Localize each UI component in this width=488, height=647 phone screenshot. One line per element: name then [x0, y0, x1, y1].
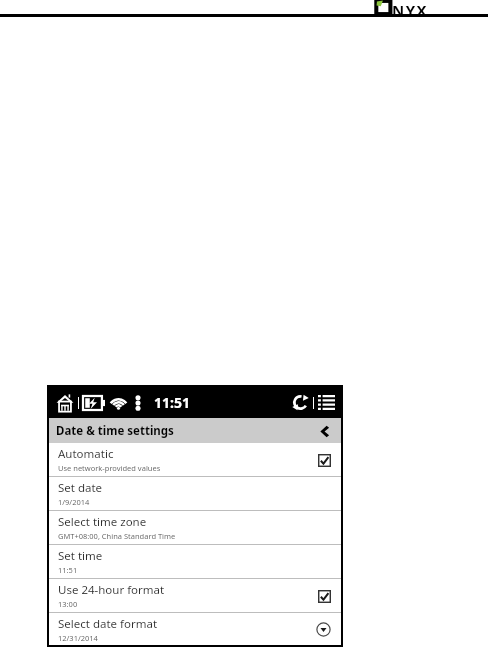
staticText: 12/31/2014	[58, 633, 98, 643]
button[interactable]: Checked	[316, 588, 332, 604]
staticText: 11:51	[58, 565, 78, 575]
staticText: Automatic	[58, 446, 114, 462]
button[interactable]: Set time	[49, 545, 341, 578]
staticText: Use network-provided values	[58, 463, 161, 473]
button[interactable]: Back	[314, 422, 332, 440]
staticText: Select time zone	[58, 514, 147, 530]
staticText: 13:00	[58, 599, 78, 609]
button[interactable]: Select date format	[314, 620, 332, 638]
staticText: Date & time settings	[56, 423, 174, 439]
staticText: GMT+08:00, China Standard Time	[58, 531, 176, 541]
button[interactable]: Use 24-hour format	[49, 579, 341, 612]
staticText: Set time	[58, 548, 103, 564]
other: More options	[134, 395, 142, 411]
staticText: 1/9/2014	[58, 497, 90, 507]
staticText: NYX	[392, 0, 429, 15]
button[interactable]: Select date format	[49, 613, 341, 645]
staticText: Set date	[58, 480, 103, 496]
button[interactable]: Select time zone	[49, 511, 341, 544]
button[interactable]: Automatic	[49, 443, 341, 476]
other: Home	[55, 393, 75, 413]
staticText: 11:51	[154, 393, 190, 412]
button[interactable]: Checked	[316, 452, 332, 468]
button[interactable]: Set date	[49, 477, 341, 510]
staticText: Use 24-hour format	[58, 582, 165, 598]
other: List	[318, 395, 335, 410]
staticText: Select date format	[58, 616, 158, 632]
other: Refresh	[292, 394, 309, 411]
